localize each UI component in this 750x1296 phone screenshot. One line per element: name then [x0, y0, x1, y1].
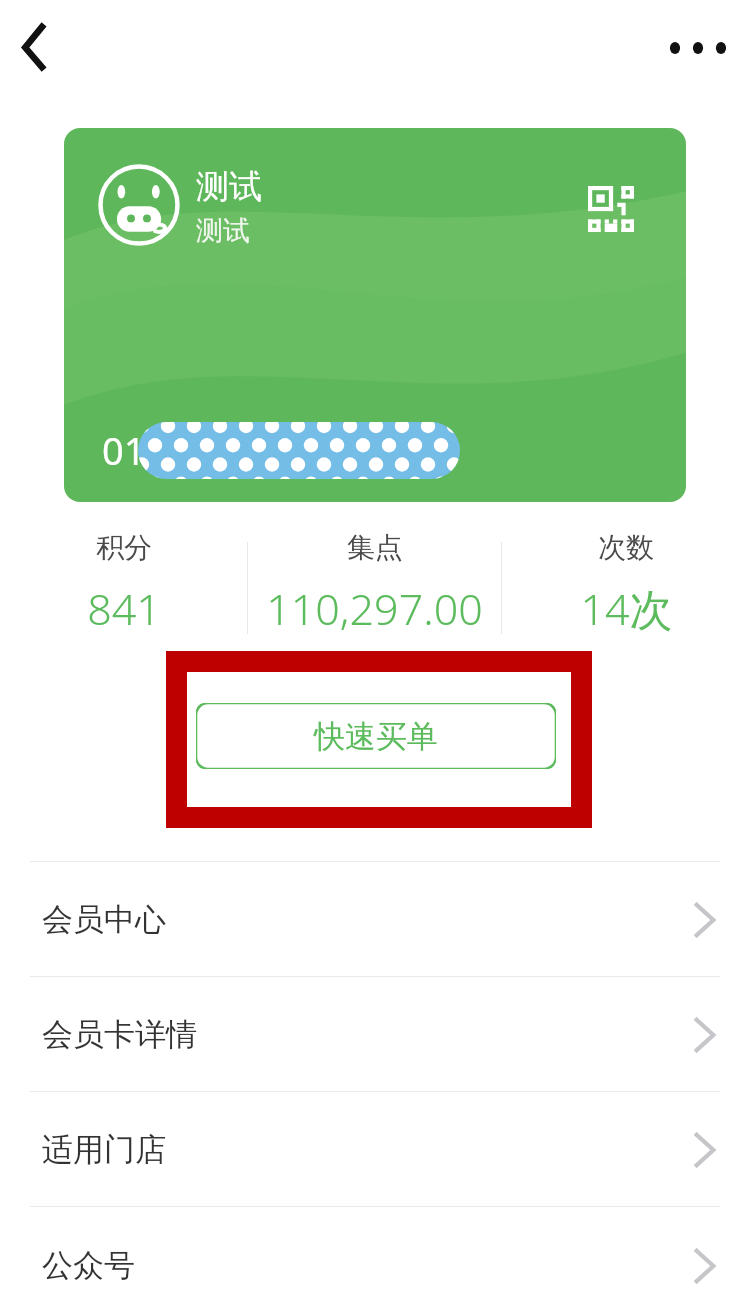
staticText: 快速买单 [314, 717, 438, 756]
button[interactable]: 测试 [64, 128, 686, 502]
staticText: 集点 [347, 530, 403, 565]
button[interactable]: 适用门店 [0, 1092, 750, 1207]
staticText: 公众号 [42, 1246, 135, 1285]
staticText: 次数 [598, 530, 654, 565]
button[interactable]: 积分 [0, 530, 247, 638]
staticText: 110,297.00 [266, 579, 483, 638]
button[interactable]: 会员中心 [0, 862, 750, 977]
staticText: 841 [87, 579, 161, 638]
button[interactable]: 次数 [502, 530, 750, 638]
button[interactable]: 会员卡详情 [0, 977, 750, 1092]
staticText: 测试 [196, 166, 262, 208]
staticText: 测试 [196, 214, 250, 248]
staticText: 适用门店 [42, 1130, 166, 1169]
staticText: 14次 [580, 579, 673, 638]
staticText: 会员中心 [42, 900, 166, 939]
button[interactable]: 集点 [248, 530, 501, 638]
button[interactable]: 快速买单 [196, 703, 556, 769]
button[interactable]: More options [656, 6, 740, 90]
button[interactable]: Back [0, 0, 84, 96]
staticText: 01 [102, 424, 146, 476]
staticText: 积分 [96, 530, 152, 565]
button[interactable]: Show card QR code [588, 186, 634, 232]
staticText: 会员卡详情 [42, 1015, 197, 1054]
button[interactable]: 公众号 [0, 1208, 750, 1296]
